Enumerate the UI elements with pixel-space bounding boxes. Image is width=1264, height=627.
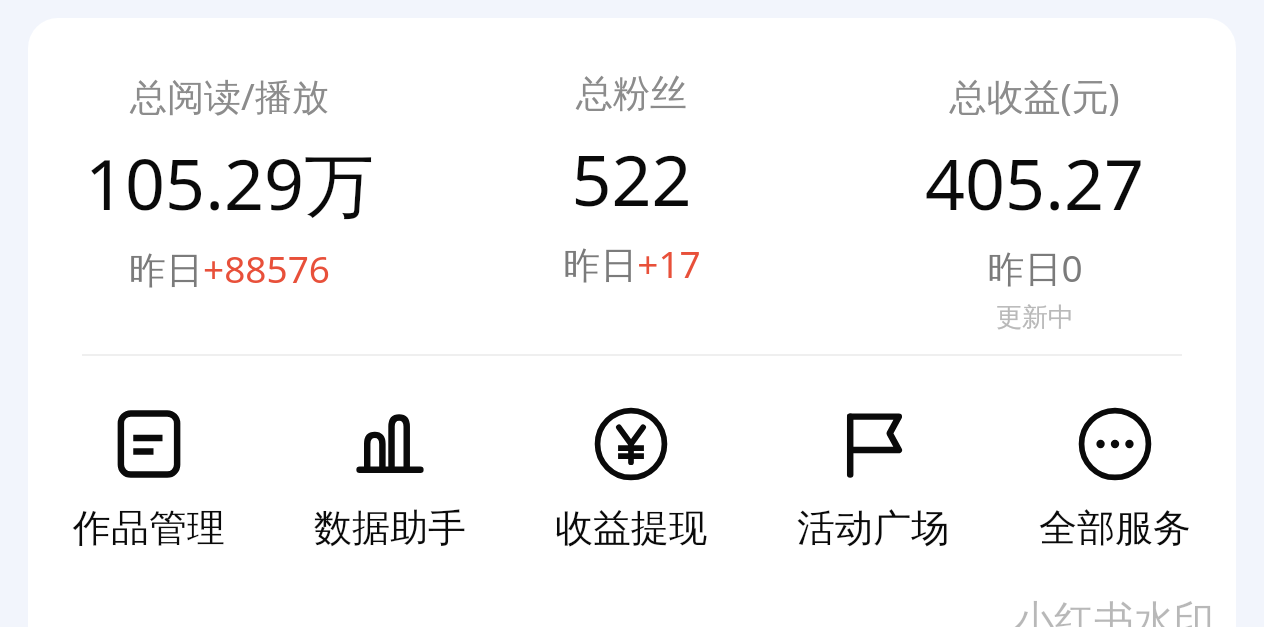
staticText: 昨日+17 [563, 238, 701, 289]
staticText: 总收益(元) [949, 70, 1120, 121]
staticText: 总阅读/播放 [130, 70, 329, 121]
button[interactable]: 活动广场 [752, 406, 994, 552]
button[interactable]: 总收益(元) [833, 70, 1236, 334]
staticText: 更新中 [996, 301, 1074, 334]
staticText: 活动广场 [797, 504, 949, 552]
button[interactable]: 作品管理 [28, 406, 269, 552]
staticText: 收益提现 [555, 504, 707, 552]
staticText: 全部服务 [1039, 504, 1191, 552]
button[interactable]: 收益提现 [510, 406, 752, 552]
staticText: 昨日+88576 [129, 243, 330, 294]
button[interactable]: 总粉丝 [430, 70, 833, 289]
staticText: 405.27 [925, 135, 1144, 230]
button[interactable]: 数据助手 [269, 406, 510, 552]
staticText: 小红书水印 [1014, 595, 1214, 627]
staticText: 105.29万 [85, 135, 374, 231]
staticText: 总粉丝 [576, 70, 687, 117]
staticText: 昨日0 [987, 242, 1083, 293]
staticText: 数据助手 [314, 504, 466, 552]
button[interactable]: 总阅读/播放 [28, 70, 430, 294]
staticText: 作品管理 [73, 504, 225, 552]
button[interactable]: 全部服务 [994, 406, 1236, 552]
staticText: 522 [571, 131, 692, 226]
